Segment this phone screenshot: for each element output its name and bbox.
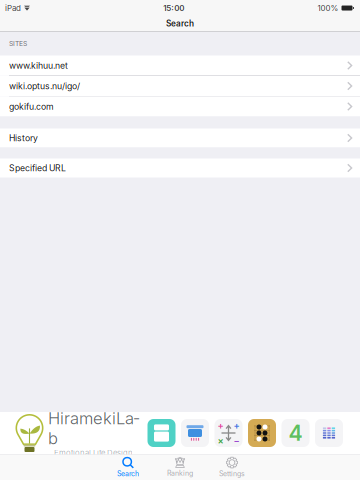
staticText: 15:00 [163, 3, 184, 13]
staticText: www.kihuu.net [9, 60, 68, 71]
staticText: Ranking [167, 469, 193, 477]
staticText: gokifu.com [9, 101, 54, 112]
staticText: iPad [5, 3, 21, 13]
button[interactable]: wiki.optus.nu/igo/ [0, 76, 360, 96]
staticText: + [217, 420, 223, 431]
button[interactable]: Settings [206, 455, 258, 480]
staticText: HiramekiLab [48, 408, 139, 448]
staticText: History [9, 133, 38, 143]
button[interactable]: www.kihuu.net [0, 55, 360, 75]
button[interactable]: History [0, 128, 360, 147]
staticText: wiki.optus.nu/igo/ [9, 81, 80, 91]
staticText: − [233, 435, 239, 446]
staticText: Emotional Life Design [54, 448, 133, 458]
staticText: × [217, 435, 223, 446]
button[interactable]: HiramekiLab advertisement [0, 412, 360, 454]
staticText: 4 [288, 420, 302, 446]
button[interactable]: Specified URL [0, 158, 360, 177]
staticText: Search [166, 18, 194, 28]
staticText: SITES [9, 39, 27, 48]
staticText: + [233, 420, 239, 431]
staticText: 100% [317, 3, 338, 13]
button[interactable]: Search [102, 455, 154, 480]
staticText: Specified URL [9, 163, 66, 173]
staticText: Settings [219, 470, 245, 478]
staticText: Search [117, 470, 139, 478]
button[interactable]: Ranking [154, 455, 206, 480]
button[interactable]: gokifu.com [0, 96, 360, 116]
